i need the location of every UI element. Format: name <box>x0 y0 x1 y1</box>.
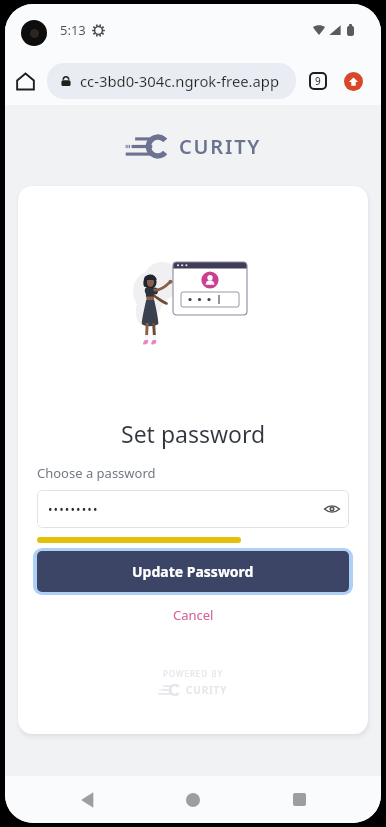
staticText: 9 <box>315 74 321 88</box>
button[interactable]: cc-3bd0-304c.ngrok-free.app <box>47 63 296 99</box>
staticText: POWERED BY <box>163 668 223 679</box>
button[interactable]: ••••••••• <box>37 490 349 528</box>
staticText: Set password <box>121 418 266 449</box>
button[interactable]: Show password <box>322 499 342 519</box>
button[interactable]: Recent apps <box>275 776 323 823</box>
button[interactable]: Home <box>169 776 217 823</box>
staticText: CURITY <box>186 683 228 697</box>
staticText: Cancel <box>173 606 214 624</box>
button[interactable]: Tabs <box>307 70 329 92</box>
button[interactable]: Home <box>10 66 40 96</box>
button[interactable]: Cancel <box>165 603 222 627</box>
staticText: CURITY <box>179 133 262 160</box>
button[interactable]: Update Password <box>37 551 349 592</box>
staticText: 5:13 <box>60 21 86 39</box>
button[interactable]: Back <box>63 776 111 823</box>
staticText: Update Password <box>132 562 254 581</box>
staticText: cc-3bd0-304c.ngrok-free.app <box>80 71 280 91</box>
staticText: Choose a password <box>37 464 156 482</box>
button[interactable]: Update Chrome <box>344 72 363 91</box>
staticText: ••••••••• <box>48 501 99 517</box>
